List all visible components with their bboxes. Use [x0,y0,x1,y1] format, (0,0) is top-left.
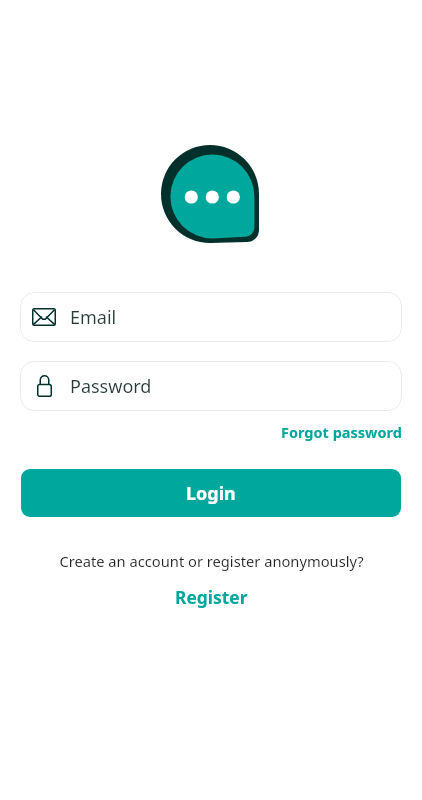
staticText: Register [175,585,248,609]
button[interactable]: Email [20,292,402,342]
staticText: Password [70,374,152,399]
button[interactable]: Register [169,583,254,611]
button[interactable]: Password [20,361,402,411]
staticText: Login [186,481,236,506]
other: Chat app logo [161,145,259,242]
button[interactable]: Login [21,469,401,517]
staticText: Email [70,305,117,330]
button[interactable]: Forgot password [279,420,404,444]
staticText: Forgot password [281,422,402,442]
staticText: Create an account or register anonymousl… [59,551,364,571]
